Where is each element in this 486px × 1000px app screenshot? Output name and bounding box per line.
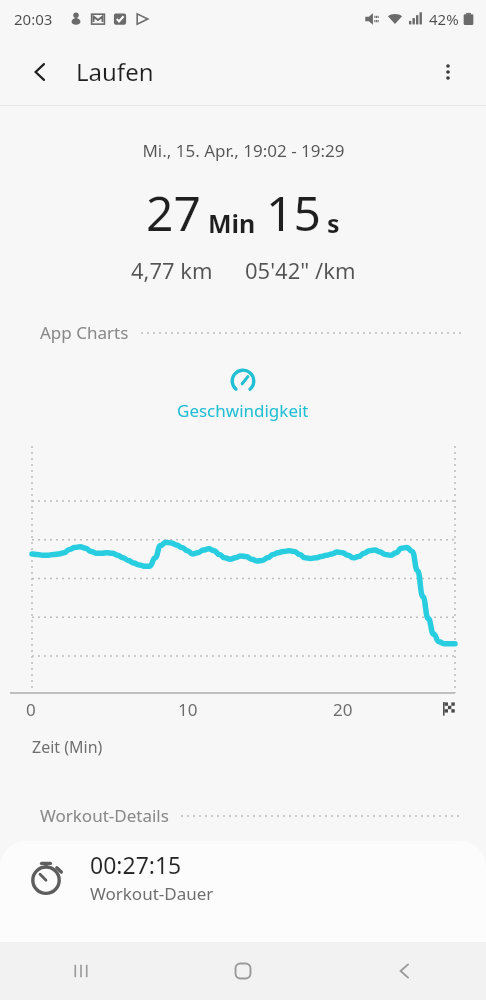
staticText: 00:27:15 <box>90 849 182 880</box>
staticText: 15 <box>266 180 321 245</box>
staticText: Zeit (Min) <box>32 736 103 758</box>
staticText: 42% <box>429 9 459 29</box>
button[interactable]: Recent apps <box>0 942 162 1000</box>
staticText: Workout-Dauer <box>90 882 214 905</box>
button[interactable]: More options <box>424 48 472 96</box>
staticText: 27 <box>146 180 201 245</box>
button[interactable]: Speed <box>0 366 486 422</box>
staticText: App Charts <box>40 321 129 344</box>
button[interactable]: Back <box>324 942 486 1000</box>
staticText: 05'42" /km <box>245 255 356 285</box>
staticText: s <box>327 206 340 240</box>
staticText: 0 <box>26 698 36 721</box>
staticText: Geschwindigkeit <box>177 399 309 422</box>
button[interactable]: Home <box>162 942 324 1000</box>
staticText: 4,77 km <box>131 255 213 285</box>
other: Speed <box>228 366 258 396</box>
staticText: 10 <box>178 698 198 721</box>
staticText: 20 <box>333 698 353 721</box>
staticText: Workout-Details <box>40 804 169 827</box>
button[interactable]: 00:27:15 <box>28 849 486 905</box>
staticText: Mi., 15. Apr., 19:02 - 19:29 <box>142 139 345 162</box>
staticText: Min <box>208 206 256 240</box>
button[interactable]: Back <box>16 48 64 96</box>
staticText: Laufen <box>76 55 154 88</box>
staticText: 20:03 <box>14 9 53 29</box>
